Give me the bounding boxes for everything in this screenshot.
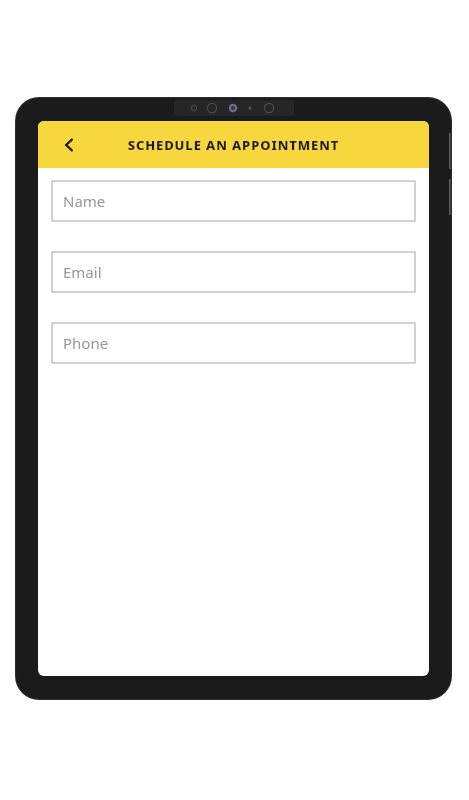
button[interactable]: Email (52, 252, 415, 292)
button[interactable]: Phone (52, 323, 415, 363)
button[interactable]: Back (52, 128, 86, 162)
staticText: Phone (63, 333, 109, 353)
button[interactable]: Name (52, 181, 415, 221)
staticText: Email (63, 262, 102, 282)
staticText: SCHEDULE AN APPOINTMENT (38, 136, 429, 154)
staticText: Name (63, 191, 106, 211)
